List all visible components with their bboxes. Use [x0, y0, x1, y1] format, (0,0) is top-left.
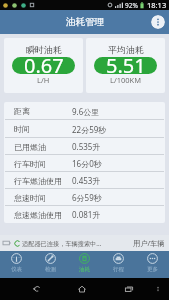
- button[interactable]: 更多: [135, 251, 169, 278]
- staticText: 5.51: [106, 52, 146, 79]
- staticText: L/H: [37, 75, 50, 85]
- staticText: 用户/车辆: [133, 238, 165, 248]
- staticText: 瞬时油耗: [26, 44, 62, 55]
- staticText: 平均油耗: [108, 44, 144, 55]
- staticText: 油耗: [79, 266, 90, 273]
- staticText: 行程: [113, 266, 124, 273]
- button[interactable]: 怠速时间: [4, 189, 165, 206]
- staticText: 油耗管理: [66, 16, 104, 28]
- staticText: L/100KM: [110, 75, 142, 85]
- button[interactable]: 行车燃油使用: [4, 172, 165, 189]
- staticText: 更多: [147, 266, 158, 273]
- staticText: 9.6公里: [72, 106, 100, 117]
- staticText: 怠速时间: [14, 193, 46, 203]
- staticText: 检测: [45, 266, 56, 273]
- staticText: 行车时间: [14, 159, 46, 169]
- button[interactable]: 行程: [101, 251, 135, 278]
- staticText: 92%: [125, 1, 138, 10]
- button[interactable]: Recents: [120, 278, 138, 300]
- staticText: 行车燃油使用: [14, 176, 62, 186]
- staticText: 已用燃油: [14, 142, 46, 152]
- button[interactable]: Back: [28, 278, 46, 300]
- button[interactable]: 行车时间: [4, 155, 165, 172]
- button[interactable]: 已用燃油: [4, 138, 165, 155]
- button[interactable]: More options: [151, 15, 165, 29]
- staticText: 16分0秒: [72, 158, 102, 169]
- button[interactable]: 瞬时油耗: [4, 38, 83, 93]
- staticText: 怠速燃油使用: [14, 210, 62, 220]
- staticText: 0.67: [24, 52, 64, 79]
- button[interactable]: 油耗: [67, 251, 101, 278]
- staticText: 6分59秒: [72, 192, 102, 203]
- staticText: 适配器已连接，车辆搜索中...: [22, 239, 102, 247]
- staticText: 18:13: [147, 0, 167, 10]
- staticText: 仪表: [11, 266, 22, 273]
- button[interactable]: Menu: [149, 278, 167, 300]
- staticText: 0.453升: [72, 175, 101, 186]
- button[interactable]: 怠速燃油使用: [4, 206, 165, 223]
- button[interactable]: 平均油耗: [86, 38, 165, 93]
- button[interactable]: 距离: [4, 102, 165, 120]
- staticText: 0.081升: [72, 209, 101, 220]
- button[interactable]: Home: [73, 278, 91, 300]
- staticText: 0.535升: [72, 141, 101, 152]
- staticText: 距离: [14, 106, 30, 116]
- staticText: 22分59秒: [72, 124, 107, 135]
- button[interactable]: 检测: [33, 251, 67, 278]
- button[interactable]: 用户/车辆: [133, 235, 169, 251]
- button[interactable]: 时间: [4, 120, 165, 138]
- staticText: 时间: [14, 124, 30, 134]
- button[interactable]: 仪表: [0, 251, 33, 278]
